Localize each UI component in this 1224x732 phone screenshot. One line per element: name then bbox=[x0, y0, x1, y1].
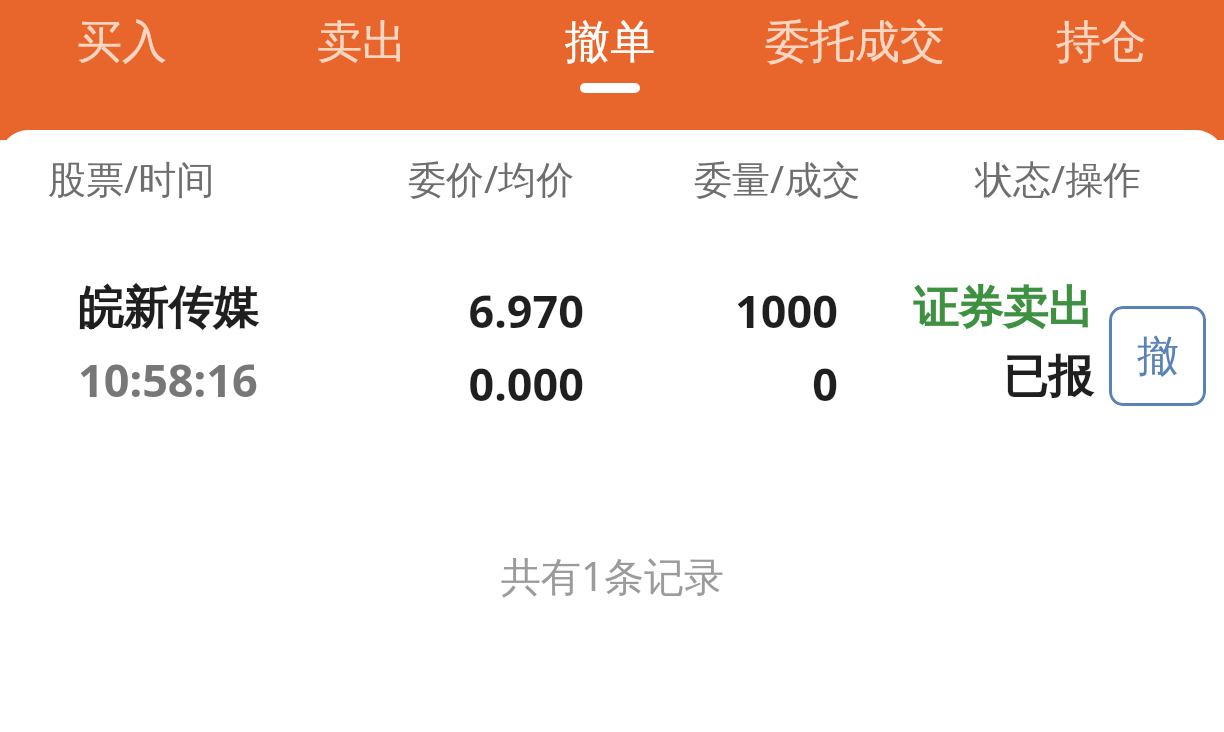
button[interactable]: 皖新传媒 bbox=[0, 276, 1224, 436]
staticText: 撤 bbox=[1137, 330, 1179, 383]
button[interactable]: 撤单 bbox=[1109, 306, 1206, 406]
button[interactable]: 卖出 bbox=[247, 14, 477, 126]
button[interactable]: 委托成交 bbox=[740, 14, 970, 126]
staticText: 10:58:16 bbox=[78, 349, 258, 410]
staticText: 0.000 bbox=[468, 353, 584, 414]
staticText: 委价/均价 bbox=[408, 152, 575, 204]
staticText: 共有1条记录 bbox=[501, 548, 724, 603]
staticText: 买入 bbox=[77, 14, 167, 71]
staticText: 1000 bbox=[735, 280, 838, 341]
button[interactable]: 撤单 bbox=[495, 14, 725, 126]
staticText: 状态/操作 bbox=[975, 152, 1142, 204]
button[interactable]: 买入 bbox=[7, 14, 237, 126]
staticText: 撤单 bbox=[565, 14, 655, 71]
staticText: 已报 bbox=[1003, 349, 1093, 406]
button[interactable]: 持仓 bbox=[986, 14, 1216, 126]
staticText: 0 bbox=[812, 353, 838, 414]
staticText: 卖出 bbox=[317, 14, 407, 71]
staticText: 股票/时间 bbox=[48, 152, 215, 204]
staticText: 皖新传媒 bbox=[78, 280, 258, 337]
staticText: 证券卖出 bbox=[913, 280, 1093, 337]
staticText: 委量/成交 bbox=[694, 152, 861, 204]
staticText: 6.970 bbox=[468, 280, 584, 341]
staticText: 委托成交 bbox=[765, 14, 945, 71]
staticText: 持仓 bbox=[1056, 14, 1146, 71]
